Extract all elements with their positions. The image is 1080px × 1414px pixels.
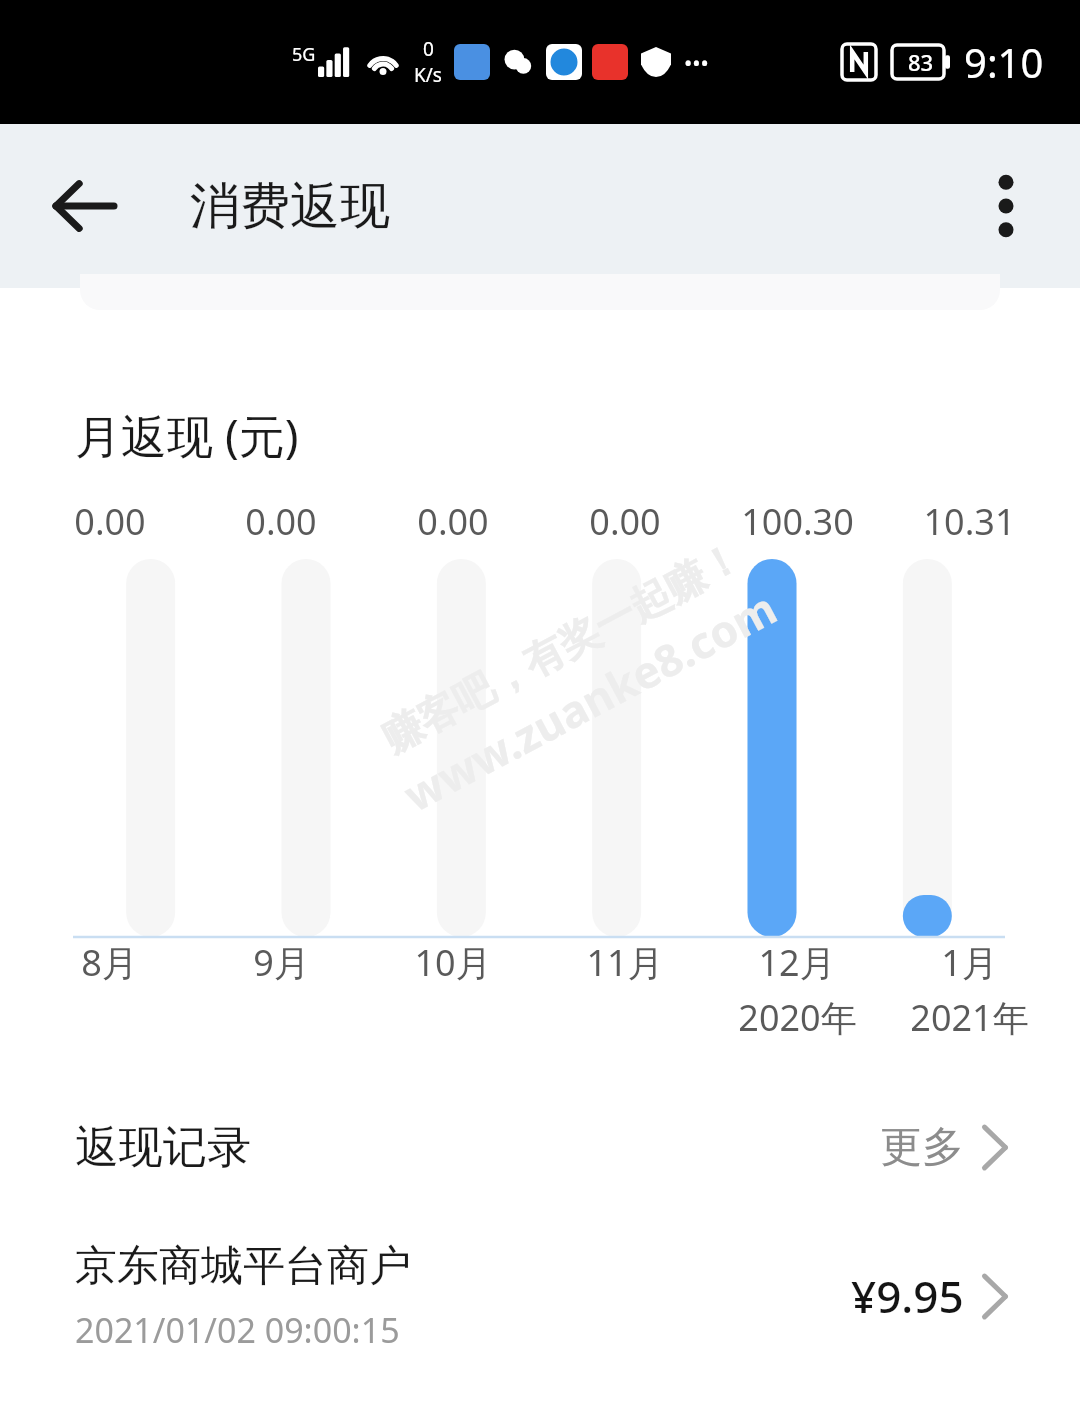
staticText: 赚客吧，有奖一起赚！ [373, 531, 750, 763]
staticText: ¥9.95 [851, 1266, 964, 1326]
staticText: 12月 [758, 938, 836, 987]
staticText: 11月 [586, 938, 664, 987]
staticText: 9月 [253, 938, 310, 987]
staticText: ••• [684, 47, 709, 77]
button[interactable]: More options [968, 168, 1044, 244]
staticText: 月返现 (元) [75, 404, 299, 467]
staticText: 0.00 [74, 497, 146, 546]
button[interactable]: 返现记录 [0, 1095, 1080, 1199]
button[interactable]: Back [46, 168, 122, 244]
staticText: 1月 [941, 938, 998, 987]
staticText: 返现记录 [75, 1120, 251, 1175]
staticText: 10.31 [923, 497, 1016, 546]
staticText: 0.00 [245, 497, 317, 546]
staticText: 100.30 [741, 497, 854, 546]
staticText: www.zuanke8.com [393, 577, 787, 824]
staticText: 0 [423, 36, 434, 62]
staticText: 83 [908, 47, 934, 77]
staticText: 2021/01/02 09:00:15 [75, 1307, 400, 1353]
button[interactable]: 京东商城平台商户 [0, 1221, 1080, 1371]
staticText: 9:10 [964, 35, 1044, 89]
staticText: 2020年 [738, 993, 857, 1042]
staticText: 0.00 [589, 497, 661, 546]
staticText: 0.00 [417, 497, 489, 546]
staticText: 更多 [880, 1121, 964, 1174]
staticText: K/s [414, 62, 442, 88]
staticText: 10月 [414, 938, 492, 987]
staticText: 8月 [81, 938, 138, 987]
staticText: 消费返现 [190, 175, 390, 238]
staticText: 京东商城平台商户 [75, 1240, 411, 1293]
staticText: 5G [292, 42, 316, 67]
staticText: 2021年 [910, 993, 1029, 1042]
